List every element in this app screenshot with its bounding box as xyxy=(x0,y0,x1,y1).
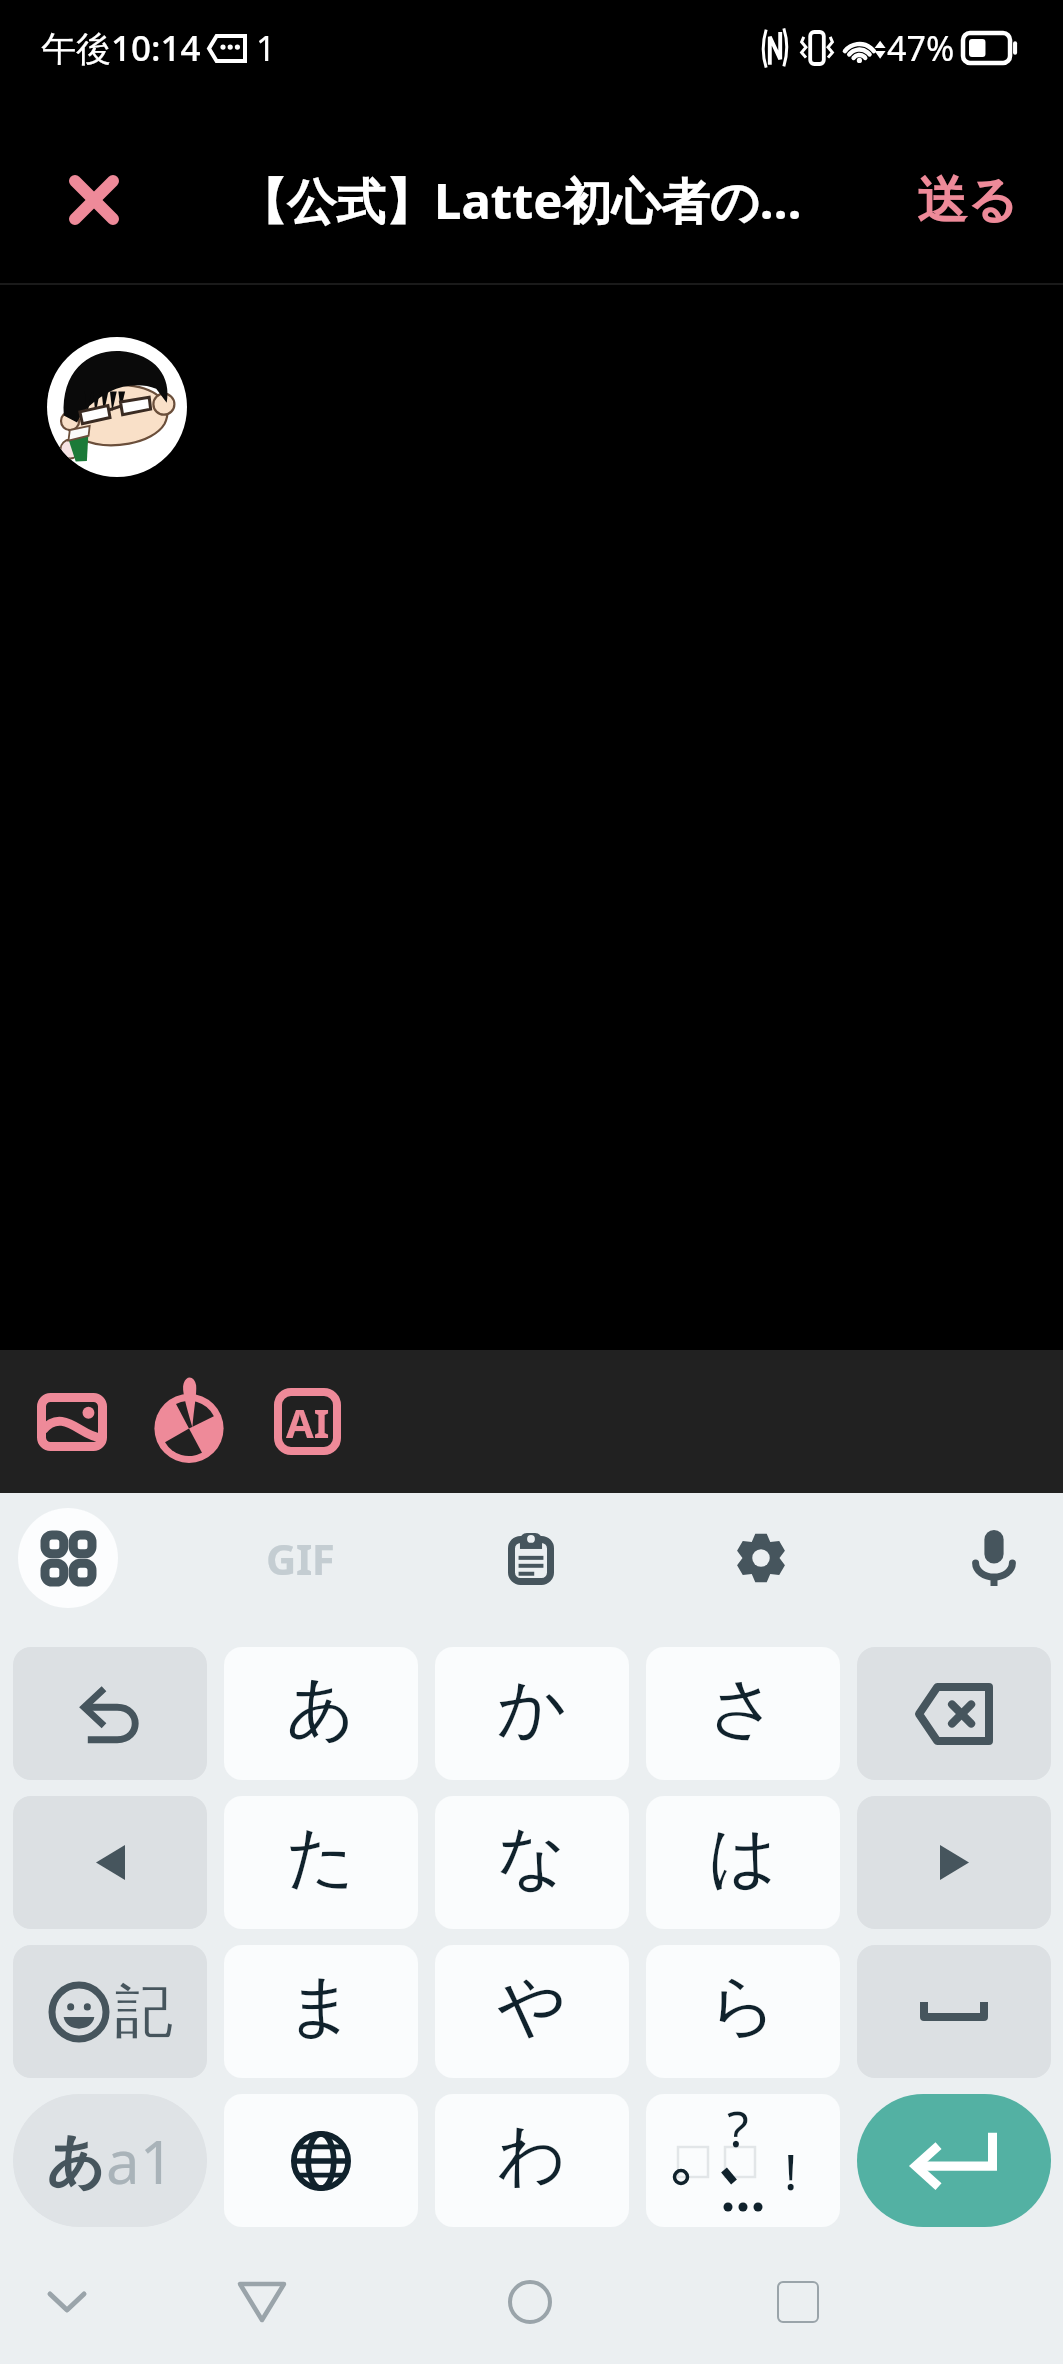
button[interactable]: Back xyxy=(202,2240,322,2364)
button[interactable]: あ xyxy=(224,1647,418,1780)
button[interactable]: Undo xyxy=(13,1647,207,1780)
staticText: 記 xyxy=(115,1975,173,2048)
button[interactable]: た xyxy=(224,1796,418,1929)
staticText: a1 xyxy=(106,2120,174,2202)
button[interactable]: Keyboard menu xyxy=(18,1508,118,1608)
staticText: や xyxy=(497,1964,567,2050)
staticText: 【公式】Latte初心者の… xyxy=(238,167,802,234)
button[interactable]: ら xyxy=(646,1945,840,2078)
staticText: ! xyxy=(784,2137,798,2205)
button[interactable]: Space xyxy=(857,1945,1051,2078)
button[interactable]: Clipboard xyxy=(487,1514,575,1602)
staticText: あ xyxy=(46,2125,106,2198)
button[interactable]: Close xyxy=(54,160,134,240)
button[interactable]: Punctuation xyxy=(646,2094,840,2227)
button[interactable]: Profile image xyxy=(47,337,187,477)
staticText: た xyxy=(286,1815,356,1901)
button[interactable]: は xyxy=(646,1796,840,1929)
button[interactable]: GIF xyxy=(252,1518,348,1598)
button[interactable]: AI assist xyxy=(247,1350,367,1493)
button[interactable]: Move cursor right xyxy=(857,1796,1051,1929)
button[interactable]: な xyxy=(435,1796,629,1929)
button[interactable]: Move cursor left xyxy=(13,1796,207,1929)
staticText: ま xyxy=(286,1964,356,2050)
button[interactable]: Create poll xyxy=(129,1350,249,1493)
button[interactable]: Emoji and symbols xyxy=(13,1945,207,2078)
button[interactable]: 送る xyxy=(907,159,1029,242)
staticText: GIF xyxy=(266,1530,335,1587)
button[interactable]: Hide keyboard xyxy=(7,2240,127,2364)
staticText: ら xyxy=(708,1964,778,2050)
button[interactable]: Add image xyxy=(12,1350,132,1493)
staticText: あ xyxy=(286,1666,356,1752)
staticText: ? xyxy=(727,2094,749,2162)
staticText: さ xyxy=(708,1666,778,1752)
staticText: わ xyxy=(497,2113,567,2199)
button[interactable]: さ xyxy=(646,1647,840,1780)
button[interactable]: Backspace xyxy=(857,1647,1051,1780)
button[interactable]: Enter xyxy=(857,2094,1051,2227)
button[interactable]: Change language xyxy=(224,2094,418,2227)
button[interactable]: Voice input xyxy=(950,1514,1038,1602)
staticText: 午後10:14 xyxy=(41,24,201,72)
staticText: な xyxy=(497,1815,567,1901)
button[interactable]: Home xyxy=(470,2240,590,2364)
staticText: 送る xyxy=(917,169,1019,232)
staticText: 47% xyxy=(887,25,955,71)
staticText: か xyxy=(497,1666,567,1752)
button[interactable]: か xyxy=(435,1647,629,1780)
button[interactable]: Switch input mode xyxy=(13,2094,207,2227)
staticText: 1 xyxy=(256,25,276,71)
staticText: AI xyxy=(286,1395,330,1449)
button[interactable]: Recent apps xyxy=(738,2240,858,2364)
button[interactable]: わ xyxy=(435,2094,629,2227)
staticText: は xyxy=(708,1815,778,1901)
button[interactable]: や xyxy=(435,1945,629,2078)
button[interactable]: Settings xyxy=(717,1514,805,1602)
button[interactable]: ま xyxy=(224,1945,418,2078)
